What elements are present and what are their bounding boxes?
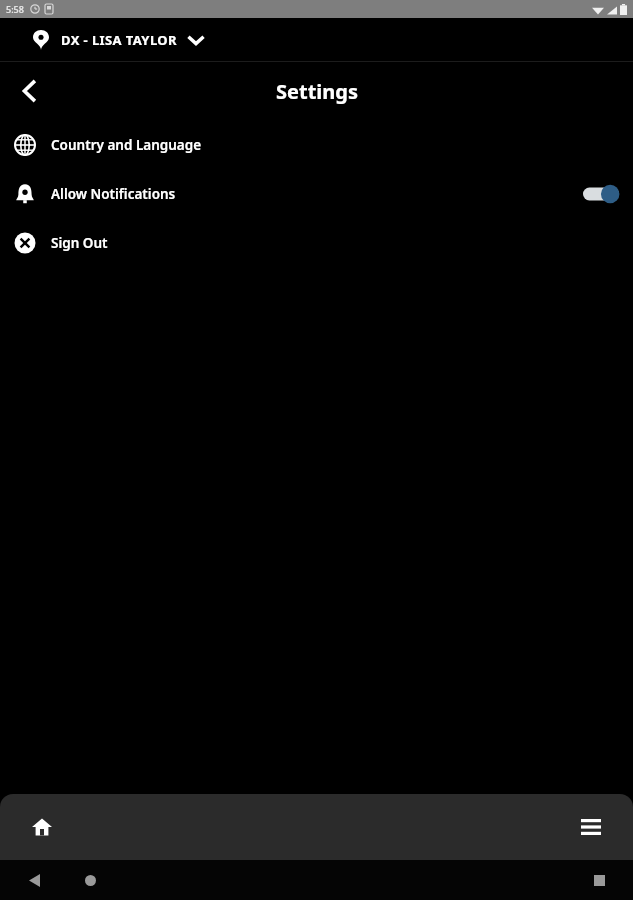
staticText: DX - LISA TAYLOR <box>61 31 177 49</box>
staticText: 5:58 <box>6 3 24 15</box>
button[interactable]: Allow Notifications <box>0 169 633 218</box>
button[interactable]: Country and Language <box>0 120 633 169</box>
staticText: Allow Notifications <box>51 185 176 203</box>
staticText: Sign Out <box>51 234 108 252</box>
staticText: Country and Language <box>51 136 202 154</box>
button[interactable]: Back <box>8 69 52 113</box>
button[interactable]: Home <box>20 805 64 849</box>
button[interactable]: Home <box>74 864 106 896</box>
button[interactable]: Back <box>18 864 50 896</box>
button[interactable]: Menu <box>569 805 613 849</box>
button[interactable]: Recent apps <box>583 864 615 896</box>
staticText: Settings <box>276 78 358 105</box>
button[interactable]: Sign Out <box>0 218 633 267</box>
button[interactable]: DX - LISA TAYLOR <box>0 18 633 61</box>
button[interactable]: Allow Notifications toggle <box>583 183 619 205</box>
